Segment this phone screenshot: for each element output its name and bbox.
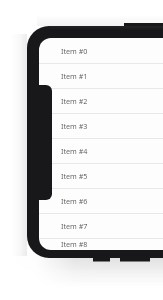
button[interactable]: Item #2 [39, 88, 163, 113]
staticText: Item #2 [61, 96, 88, 106]
staticText: Item #3 [61, 121, 88, 131]
button[interactable]: Item #1 [39, 63, 163, 88]
staticText: Item #8 [61, 239, 88, 249]
staticText: Item #4 [61, 146, 88, 156]
staticText: Item #7 [61, 221, 88, 231]
button[interactable]: Item #6 [39, 188, 163, 213]
staticText: Item #5 [61, 171, 88, 181]
staticText: Item #0 [61, 46, 88, 56]
button[interactable]: Item #4 [39, 138, 163, 163]
button[interactable]: Item #3 [39, 113, 163, 138]
staticText: Item #1 [61, 71, 88, 81]
button[interactable]: Item #5 [39, 163, 163, 188]
button[interactable]: Item #8 [39, 238, 163, 250]
button[interactable]: Item #0 [39, 38, 163, 63]
staticText: Item #6 [61, 196, 88, 206]
button[interactable]: Item #7 [39, 213, 163, 238]
